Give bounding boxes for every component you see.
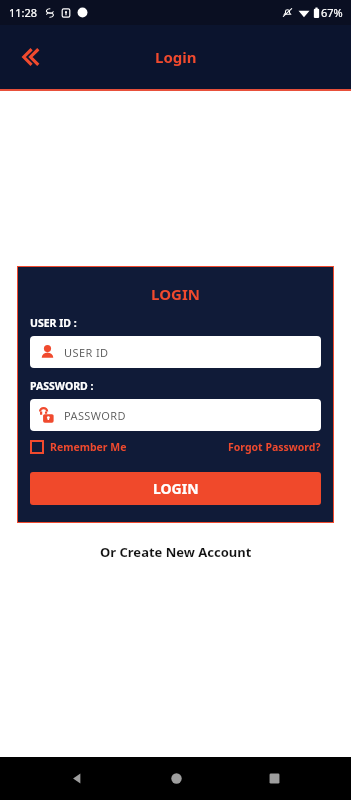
staticText: Login — [155, 47, 197, 67]
staticText: PASSWORD : — [30, 379, 94, 393]
staticText: LOGIN — [153, 479, 199, 498]
button[interactable]: Back — [8, 35, 52, 79]
button[interactable]: LOGIN — [30, 472, 321, 505]
staticText: Forgot Password? — [228, 440, 321, 454]
staticText: USER ID — [64, 345, 109, 360]
button[interactable]: Remember Me — [30, 440, 127, 454]
button[interactable]: Home — [154, 757, 198, 800]
button[interactable]: Recent apps — [252, 757, 296, 800]
button[interactable]: USER ID — [30, 336, 321, 368]
button[interactable]: Back — [55, 757, 99, 800]
staticText: 67% — [321, 5, 343, 20]
staticText: Or Create New Account — [100, 543, 252, 561]
staticText: USER ID : — [30, 316, 77, 330]
button[interactable]: Or Create New Account — [0, 543, 351, 561]
staticText: Remember Me — [50, 440, 127, 454]
staticText: 11:28 — [9, 5, 38, 20]
button[interactable]: Forgot Password? — [228, 440, 321, 454]
staticText: LOGIN — [30, 284, 321, 304]
button[interactable]: PASSWORD — [30, 399, 321, 431]
staticText: PASSWORD — [64, 408, 126, 423]
